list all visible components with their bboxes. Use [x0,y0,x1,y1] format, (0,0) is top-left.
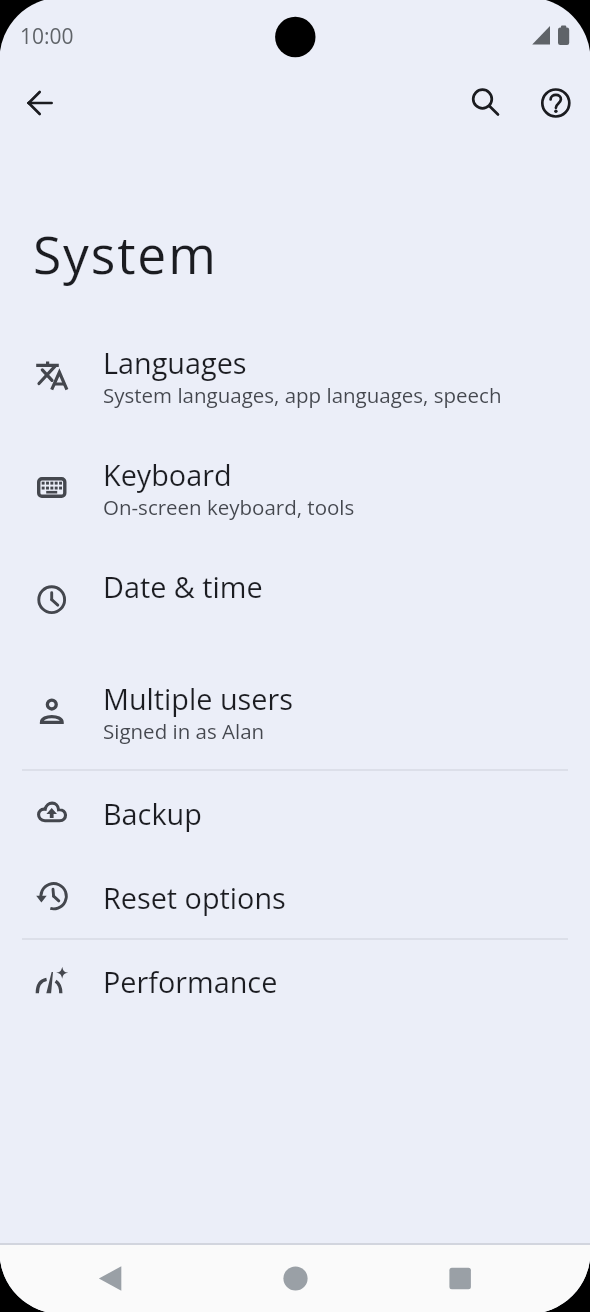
button[interactable]: Recent apps [412,1245,508,1312]
staticText: Languages [103,343,247,382]
staticText: System languages, app languages, speech [103,381,502,409]
button[interactable]: Performance [0,938,590,1022]
button[interactable]: Back [18,81,62,125]
staticText: Multiple users [103,679,293,718]
staticText: Signed in as Alan [103,717,265,745]
button[interactable]: Languages [0,319,590,431]
staticText: Date & time [103,567,263,606]
button[interactable]: Help [534,81,578,125]
staticText: 10:00 [20,22,74,51]
staticText: System [33,219,218,289]
button[interactable]: Home [258,1245,354,1312]
button[interactable]: Back [83,1245,179,1312]
button[interactable]: Backup [0,770,590,854]
button[interactable]: Reset options [0,854,590,938]
staticText: Reset options [103,878,286,917]
button[interactable]: Search [464,81,508,125]
staticText: Backup [103,794,202,833]
button[interactable]: Keyboard [0,431,590,543]
button[interactable]: Multiple users [0,655,590,767]
staticText: Keyboard [103,455,232,494]
button[interactable]: Date & time [0,543,590,655]
staticText: On-screen keyboard, tools [103,493,355,521]
staticText: Performance [103,962,278,1001]
